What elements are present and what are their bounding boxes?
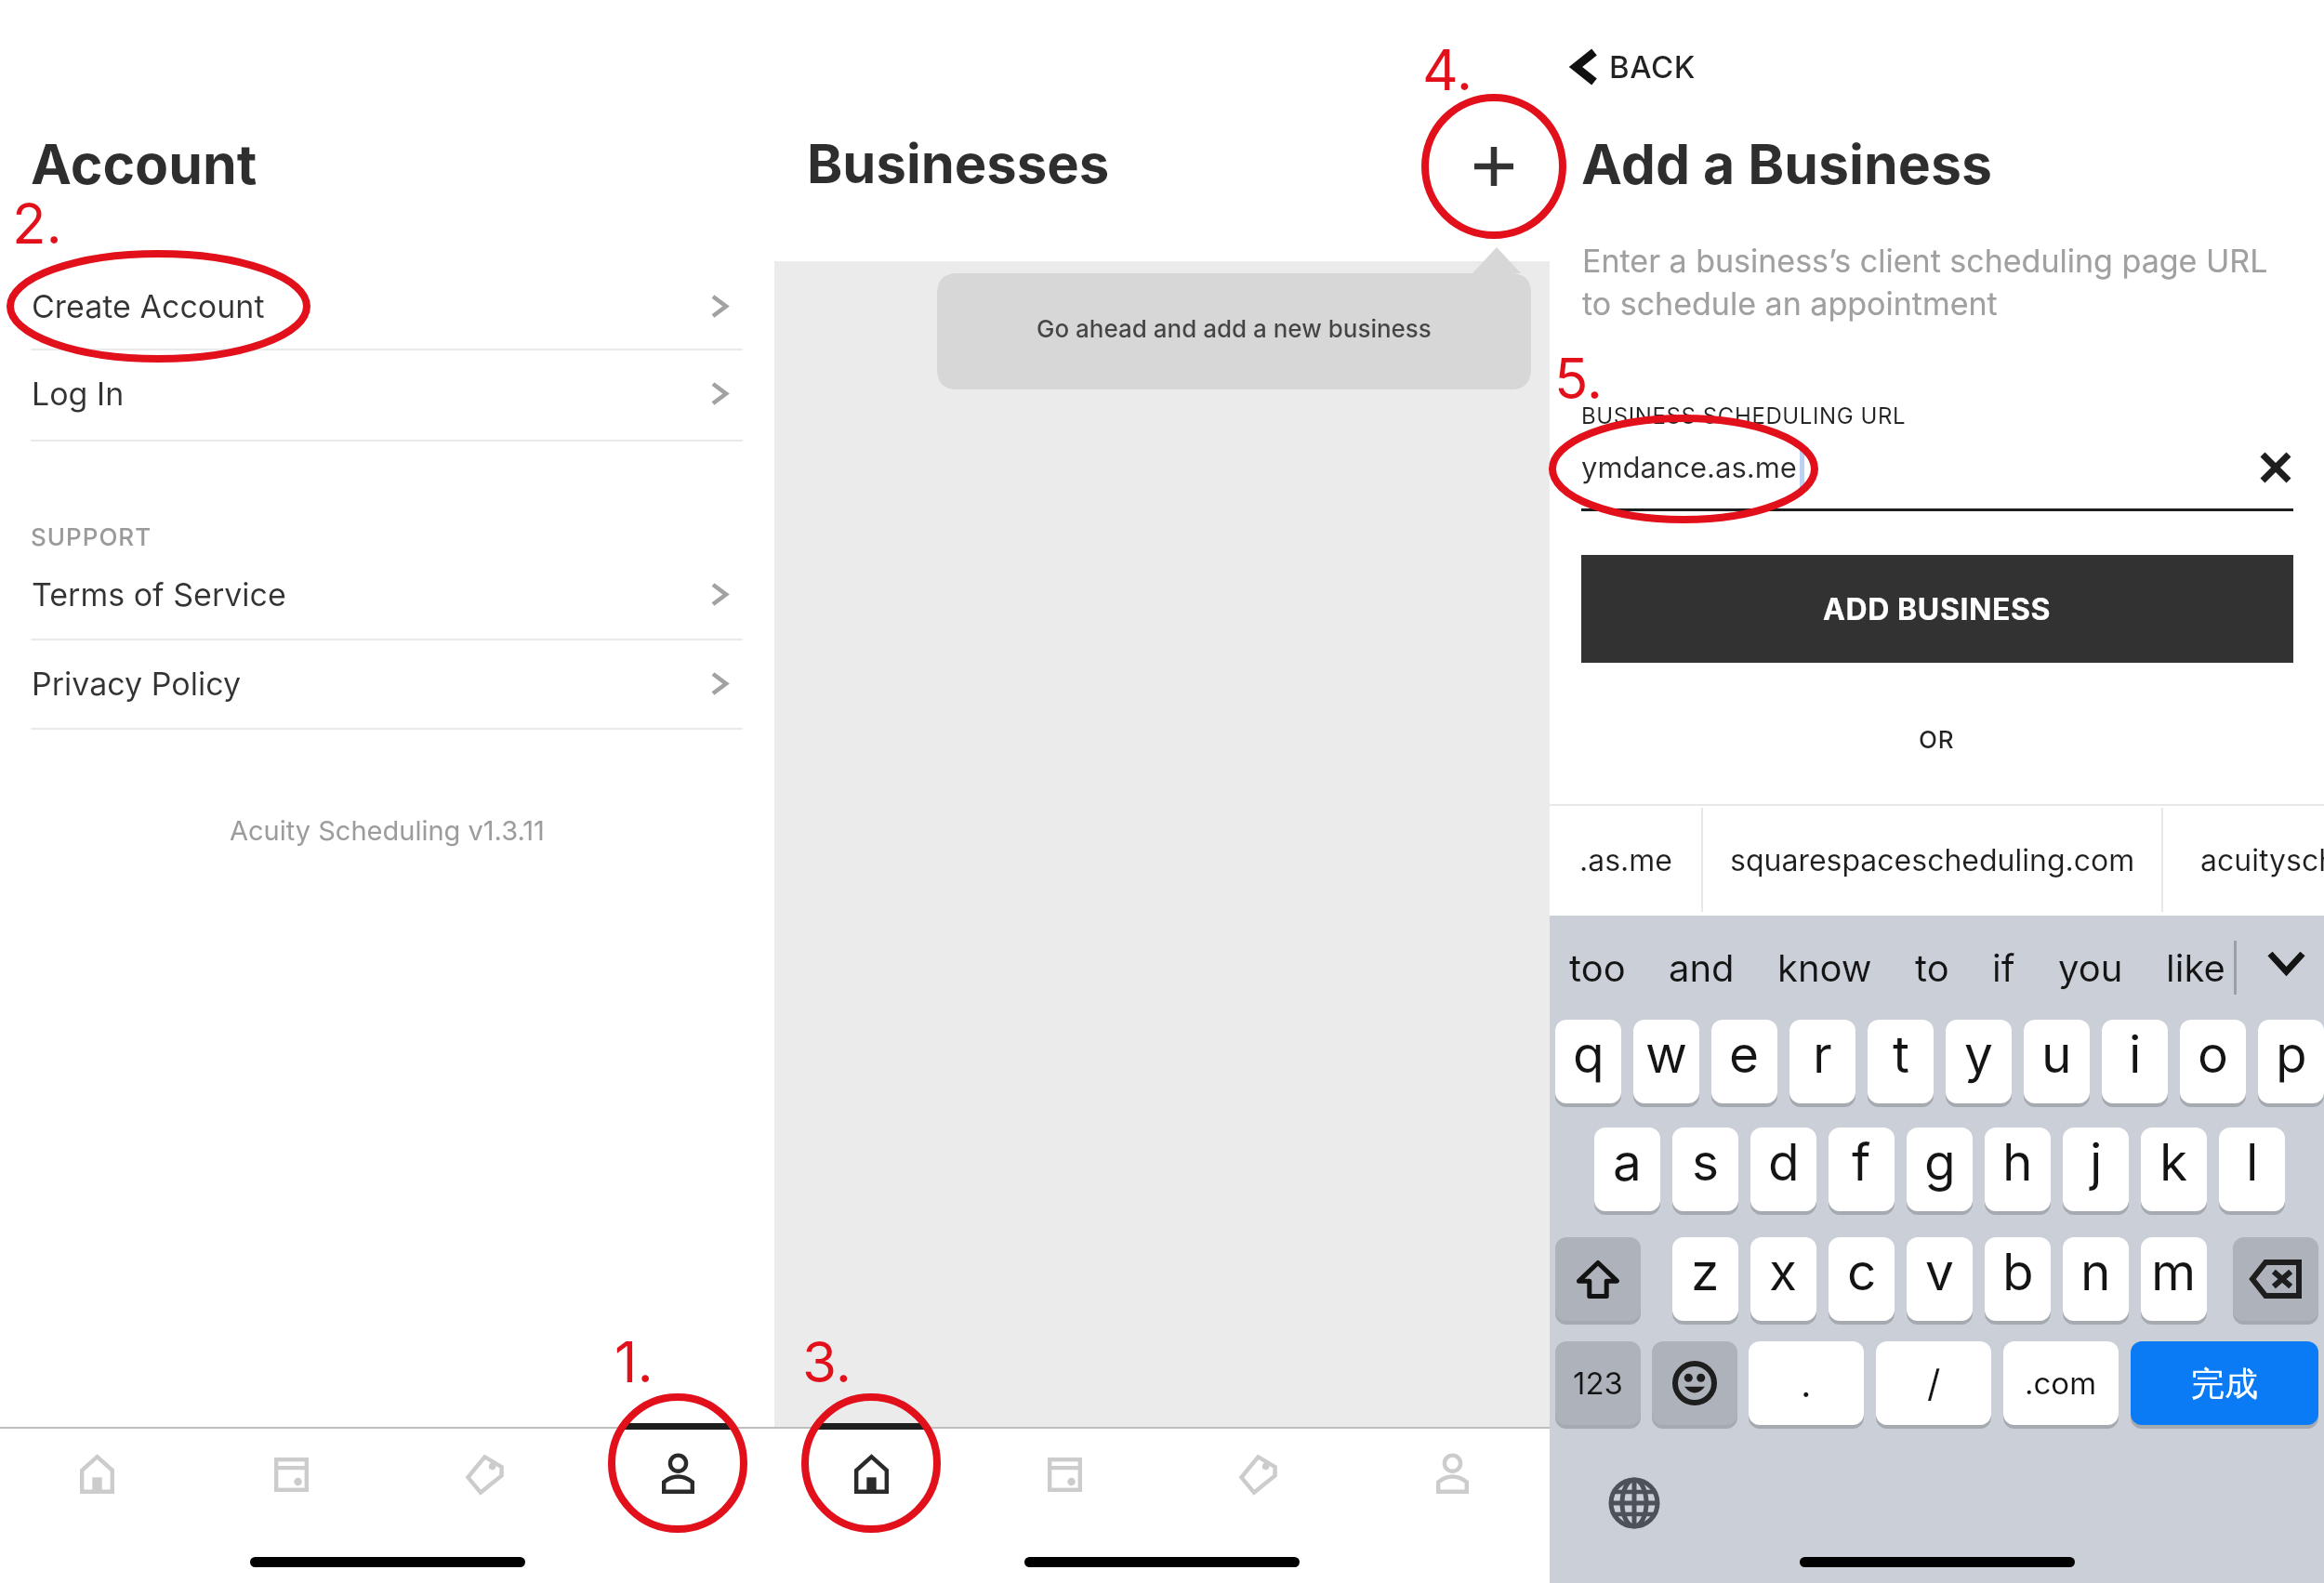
staticText: SUPPORT — [31, 522, 152, 551]
button[interactable]: h — [1985, 1128, 2051, 1211]
staticText: to — [1915, 945, 1949, 990]
staticText: you — [2058, 945, 2123, 990]
staticText: f — [1852, 1131, 1871, 1194]
button[interactable]: Hide predictions — [2259, 935, 2313, 989]
button[interactable]: Clear text — [2251, 443, 2300, 492]
button[interactable]: Backspace — [2233, 1237, 2318, 1321]
staticText: Add a Business — [1581, 131, 1993, 197]
button[interactable]: s — [1672, 1128, 1738, 1211]
button[interactable]: d — [1750, 1128, 1816, 1211]
button[interactable]: i — [2102, 1020, 2168, 1103]
staticText: know — [1777, 945, 1872, 990]
button[interactable]: Numbers — [1555, 1341, 1641, 1425]
button[interactable]: Home — [0, 1427, 194, 1522]
button[interactable]: a — [1594, 1128, 1660, 1211]
button[interactable]: Account — [1355, 1427, 1550, 1522]
button[interactable]: j — [2063, 1128, 2129, 1211]
staticText: 5. — [1554, 345, 1604, 413]
button[interactable]: Account — [581, 1427, 774, 1522]
button[interactable]: y — [1946, 1020, 2012, 1103]
button[interactable]: Change keyboard — [1603, 1471, 1666, 1535]
button[interactable]: z — [1672, 1237, 1738, 1321]
button[interactable]: / — [1876, 1341, 1991, 1425]
staticText: Log In — [32, 375, 125, 413]
button[interactable]: Privacy Policy — [0, 645, 774, 721]
button[interactable]: squarespacescheduling.com — [1703, 804, 2161, 916]
button[interactable]: acuitysch — [2163, 804, 2324, 916]
button[interactable]: e — [1711, 1020, 1777, 1103]
staticText: BACK — [1609, 48, 1697, 86]
button[interactable]: Shift — [1555, 1237, 1641, 1321]
staticText: .as.me — [1579, 842, 1672, 878]
staticText: 4. — [1422, 36, 1473, 104]
button[interactable]: Appointments — [194, 1427, 388, 1522]
button[interactable]: like — [2145, 945, 2247, 990]
button[interactable]: . — [1749, 1341, 1864, 1425]
button[interactable]: m — [2141, 1237, 2207, 1321]
staticText: Terms of Service — [32, 575, 286, 613]
staticText: y — [1964, 1023, 1993, 1086]
button[interactable]: Offers — [1161, 1427, 1355, 1522]
staticText: Privacy Policy — [32, 665, 242, 703]
staticText: t — [1893, 1023, 1909, 1086]
button[interactable]: n — [2063, 1237, 2129, 1321]
staticText: 123 — [1573, 1365, 1623, 1402]
staticText: squarespacescheduling.com — [1730, 842, 2135, 878]
button[interactable]: v — [1907, 1237, 1973, 1321]
staticText: ymdance.as.me — [1581, 450, 1797, 485]
button[interactable]: Appointments — [968, 1427, 1161, 1522]
button[interactable]: Log In — [0, 355, 774, 431]
staticText: i — [2129, 1023, 2142, 1086]
button[interactable]: 完成 — [2131, 1341, 2318, 1425]
staticText: Businesses — [807, 131, 1110, 196]
staticText: Create Account — [32, 287, 265, 325]
staticText: p — [2276, 1023, 2307, 1086]
button[interactable]: u — [2024, 1020, 2090, 1103]
button[interactable]: .com — [2003, 1341, 2119, 1425]
button[interactable]: to — [1894, 945, 1971, 990]
staticText: .com — [2025, 1365, 2097, 1402]
staticText: Account — [31, 131, 257, 197]
staticText: if — [1992, 945, 2015, 990]
staticText: j — [2090, 1131, 2103, 1194]
button[interactable]: Emoji — [1652, 1341, 1737, 1425]
button[interactable]: too — [1548, 945, 1647, 990]
button[interactable]: Back — [1563, 33, 1710, 100]
button[interactable]: c — [1829, 1237, 1895, 1321]
button[interactable]: Add a business — [1462, 135, 1525, 198]
staticText: l — [2246, 1131, 2259, 1194]
staticText: ADD BUSINESS — [1823, 591, 2052, 627]
button[interactable]: g — [1907, 1128, 1973, 1211]
button[interactable]: know — [1756, 945, 1894, 990]
button[interactable]: t — [1868, 1020, 1934, 1103]
button[interactable]: f — [1829, 1128, 1895, 1211]
button[interactable]: .as.me — [1550, 804, 1701, 916]
staticText: d — [1768, 1131, 1800, 1194]
button[interactable]: you — [2037, 945, 2145, 990]
button[interactable]: k — [2141, 1128, 2207, 1211]
button[interactable]: p — [2258, 1020, 2324, 1103]
staticText: x — [1769, 1241, 1798, 1303]
staticText: 1. — [614, 1328, 654, 1396]
staticText: n — [2080, 1241, 2111, 1303]
button[interactable]: if — [1971, 945, 2037, 990]
staticText: v — [1925, 1241, 1954, 1303]
button[interactable]: r — [1789, 1020, 1855, 1103]
staticText: w — [1645, 1023, 1688, 1086]
staticText: r — [1813, 1023, 1832, 1086]
staticText: m — [2151, 1241, 2197, 1303]
button[interactable]: w — [1633, 1020, 1699, 1103]
button[interactable]: q — [1555, 1020, 1621, 1103]
staticText: 3. — [802, 1328, 852, 1396]
button[interactable]: b — [1985, 1237, 2051, 1321]
button[interactable]: and — [1647, 945, 1756, 990]
button[interactable]: Create Account — [0, 268, 774, 344]
staticText: 完成 — [2191, 1363, 2258, 1405]
button[interactable]: ADD BUSINESS — [1581, 555, 2293, 663]
button[interactable]: Home — [774, 1427, 968, 1522]
button[interactable]: x — [1750, 1237, 1816, 1321]
button[interactable]: Terms of Service — [0, 556, 774, 632]
button[interactable]: o — [2180, 1020, 2246, 1103]
button[interactable]: l — [2219, 1128, 2285, 1211]
button[interactable]: Offers — [388, 1427, 581, 1522]
